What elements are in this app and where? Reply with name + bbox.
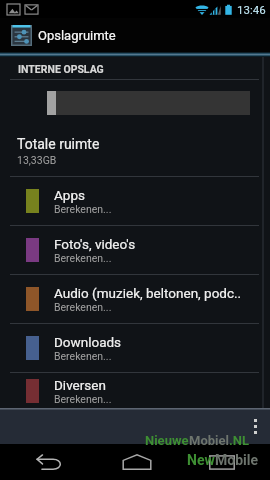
staticText: Berekenen...: [54, 301, 112, 313]
staticText: INTERNE OPSLAG: [18, 63, 104, 75]
button[interactable]: Home: [99, 444, 174, 480]
staticText: 13:46: [237, 3, 266, 16]
button[interactable]: Foto's, video's: [0, 226, 270, 275]
staticText: Berekenen...: [54, 252, 112, 264]
button[interactable]: More options: [240, 408, 270, 444]
button[interactable]: Apps: [0, 177, 270, 226]
button[interactable]: Downloads: [0, 324, 270, 373]
button[interactable]: Totale ruimte: [0, 115, 270, 177]
staticText: Berekenen...: [54, 350, 112, 362]
staticText: Berekenen...: [54, 393, 112, 405]
staticText: Nieuwe: [145, 433, 189, 448]
staticText: Mobile: [215, 452, 259, 468]
button[interactable]: Opslagruimte: [0, 18, 270, 52]
staticText: Mobiel: [189, 433, 229, 448]
staticText: Downloads: [54, 334, 122, 350]
button[interactable]: Recent apps: [174, 444, 270, 480]
staticText: 13,33GB: [17, 154, 57, 166]
staticText: Apps: [54, 187, 85, 203]
staticText: Foto's, video's: [54, 236, 136, 252]
button[interactable]: Audio (muziek, beltonen, podc..: [0, 275, 270, 324]
staticText: Diversen: [54, 377, 106, 393]
staticText: Totale ruimte: [17, 136, 100, 152]
staticText: Audio (muziek, beltonen, podc..: [54, 285, 242, 301]
staticText: New: [187, 452, 215, 468]
staticText: Berekenen...: [54, 203, 112, 215]
button[interactable]: Back: [0, 444, 99, 480]
button[interactable]: Diversen: [0, 373, 270, 408]
staticText: .NL: [229, 433, 249, 448]
staticText: Opslagruimte: [38, 28, 116, 43]
